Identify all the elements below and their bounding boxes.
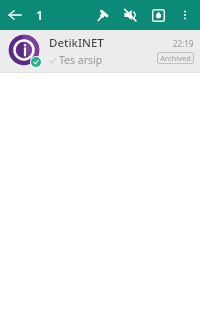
staticText: 1 — [36, 6, 44, 24]
staticText: Archived — [160, 53, 191, 63]
button[interactable]: Pin — [88, 1, 116, 29]
button[interactable]: Mute — [116, 1, 144, 29]
button[interactable]: Back — [0, 0, 30, 30]
staticText: 22:19 — [173, 38, 194, 49]
button[interactable]: DetikINET — [0, 30, 200, 72]
button[interactable]: More options — [172, 2, 198, 28]
button[interactable]: Archive — [144, 1, 172, 29]
staticText: DetikINET — [49, 35, 104, 51]
staticText: Tes arsip — [59, 53, 103, 67]
